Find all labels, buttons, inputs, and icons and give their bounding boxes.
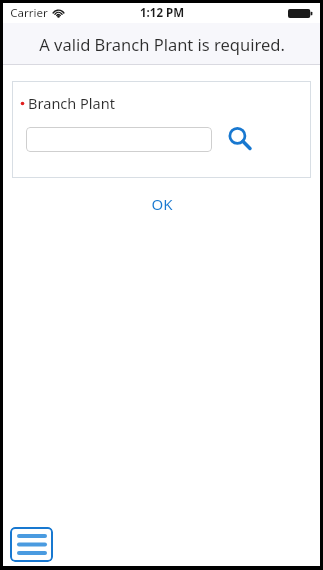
staticText: Carrier: [10, 5, 48, 21]
button[interactable]: OK: [137, 190, 187, 218]
staticText: OK: [151, 194, 173, 214]
button[interactable]: Branch Plant input: [26, 127, 212, 152]
staticText: Branch Plant: [28, 93, 115, 113]
button[interactable]: Menu: [10, 527, 53, 562]
staticText: A valid Branch Plant is required.: [39, 33, 285, 55]
staticText: 1:12 PM: [140, 5, 184, 21]
button[interactable]: Search: [225, 124, 255, 154]
